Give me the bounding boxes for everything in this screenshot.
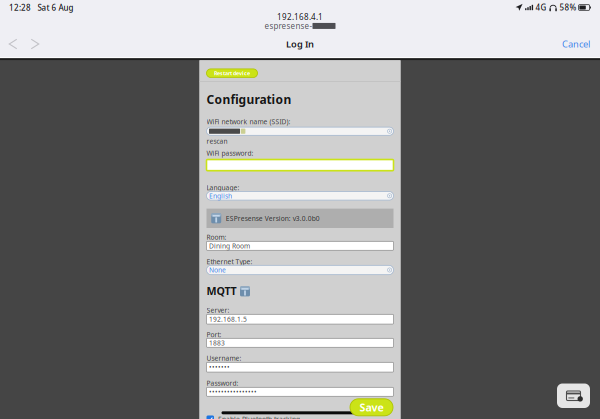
staticText: Port: [206, 330, 221, 339]
staticText: Password: [206, 379, 238, 388]
staticText: Ethernet Type: [206, 257, 252, 266]
staticText: Language: [206, 183, 239, 192]
staticText: Save [359, 400, 383, 414]
staticText: Room: [206, 233, 226, 242]
staticText: WiFi password: [206, 149, 253, 158]
staticText: 12:28 [9, 2, 31, 13]
staticText: WiFi network name (SSID): [206, 117, 290, 126]
staticText: 1883 [209, 338, 225, 347]
button[interactable]: Cancel [559, 32, 593, 56]
staticText: •••••••••••••••• [209, 387, 257, 396]
staticText: 192.168.4.1 [277, 12, 323, 22]
staticText: Sat 6 Aug [37, 2, 73, 13]
staticText: espresense- [264, 21, 312, 31]
staticText: 58% [560, 2, 577, 13]
button[interactable]: rescan [206, 137, 227, 146]
button[interactable]: Restart device [206, 69, 257, 77]
staticText: Enable Bluetooth tracking [218, 415, 300, 419]
button[interactable]: AutoFill credit card [557, 383, 590, 408]
staticText: ••••••• [209, 363, 230, 372]
button[interactable]: Save [350, 399, 393, 416]
staticText: ESPresense Version: v3.0.0b0 [226, 214, 320, 223]
staticText: 4G [536, 2, 547, 13]
staticText: Configuration [206, 91, 291, 107]
staticText: Dining Room [209, 241, 250, 250]
staticText: MQTT [206, 284, 236, 298]
staticText: English [209, 191, 232, 200]
staticText: None [209, 266, 226, 274]
staticText: 192.168.1.5 [209, 315, 247, 324]
staticText: rescan [206, 137, 227, 146]
staticText: Username: [206, 354, 241, 363]
staticText: Cancel [562, 38, 590, 50]
staticText: Server: [206, 306, 229, 315]
button[interactable]: Back [2, 32, 24, 56]
staticText: Log In [286, 38, 314, 50]
button[interactable]: Forward [24, 32, 46, 56]
staticText: Restart device [214, 70, 250, 77]
